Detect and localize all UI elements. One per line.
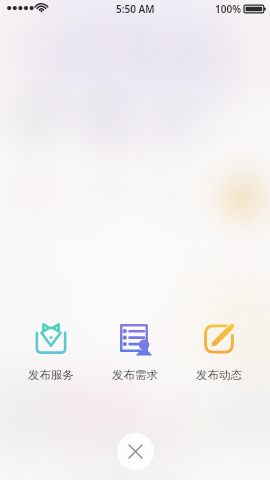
button[interactable]: 发布服务 bbox=[14, 320, 88, 384]
staticText: 发布动态 bbox=[196, 368, 242, 382]
staticText: 5:50 AM bbox=[116, 2, 155, 16]
button[interactable]: 关闭 bbox=[117, 433, 154, 470]
other: 发布动态 bbox=[202, 322, 236, 356]
staticText: 发布需求 bbox=[112, 368, 158, 382]
other: 发布需求 bbox=[118, 322, 152, 356]
other: 发布服务 bbox=[34, 322, 68, 356]
button[interactable]: 发布需求 bbox=[98, 320, 172, 384]
button[interactable]: 发布动态 bbox=[182, 320, 256, 384]
staticText: 100% bbox=[215, 2, 241, 16]
staticText: 发布服务 bbox=[28, 368, 74, 382]
